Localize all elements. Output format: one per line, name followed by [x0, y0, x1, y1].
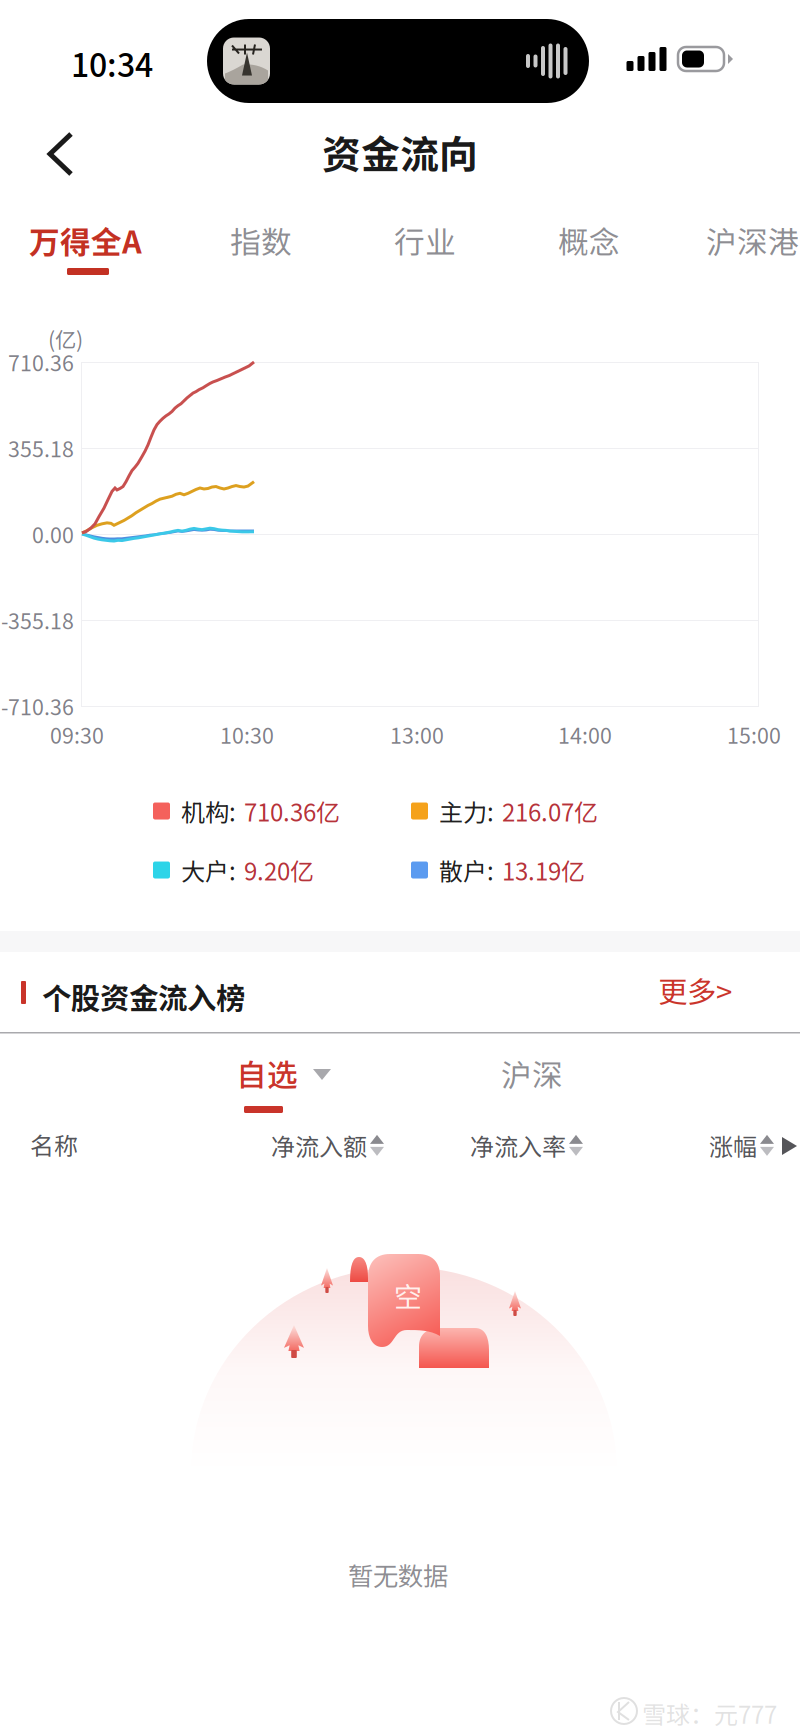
button[interactable]: 沪深港通 — [706, 203, 800, 293]
staticText: 沪深港通 — [706, 218, 800, 262]
button[interactable]: 沪深 — [501, 1051, 581, 1111]
staticText: 空 — [394, 1275, 422, 1315]
staticText: 355.18 — [8, 433, 74, 463]
staticText: 万得全A — [29, 218, 142, 262]
button[interactable]: Back — [28, 118, 104, 194]
button[interactable]: 涨幅 — [709, 1122, 774, 1169]
staticText: -355.18 — [1, 605, 74, 635]
button[interactable]: 万得全A — [29, 203, 179, 293]
staticText: 净流入率 — [470, 1128, 566, 1163]
staticText: 沪深 — [501, 1051, 563, 1095]
staticText: (亿) — [48, 323, 83, 354]
button[interactable]: 自选 — [236, 1040, 340, 1118]
staticText: 710.36 — [8, 347, 74, 377]
staticText: 指数 — [230, 218, 292, 262]
staticText: 雪球：元777 — [642, 1696, 777, 1731]
staticText: 自选 — [236, 1051, 298, 1095]
staticText: 216.07亿 — [502, 794, 598, 828]
staticText: 0.00 — [32, 519, 74, 549]
staticText: 行业 — [394, 218, 456, 262]
button[interactable]: 更多> — [658, 960, 768, 1020]
staticText: 10:30 — [220, 719, 274, 750]
staticText: 更多> — [658, 969, 732, 1011]
staticText: 13.19亿 — [502, 853, 585, 887]
staticText: -710.36 — [1, 691, 74, 721]
staticText: 概念 — [558, 218, 620, 262]
staticText: 净流入额 — [271, 1128, 367, 1163]
staticText: 名称 — [30, 1127, 78, 1162]
staticText: 10:34 — [71, 40, 153, 86]
button[interactable]: 净流入额 — [271, 1122, 384, 1169]
staticText: 大户: — [181, 853, 236, 887]
button[interactable]: 行业 — [394, 203, 544, 293]
staticText: 暂无数据 — [348, 1556, 448, 1593]
staticText: 主力: — [439, 794, 494, 828]
staticText: 09:30 — [50, 719, 104, 750]
staticText: 9.20亿 — [244, 853, 314, 887]
staticText: 13:00 — [390, 719, 444, 750]
staticText: 14:00 — [558, 719, 612, 750]
button[interactable]: 概念 — [558, 203, 708, 293]
button[interactable]: 指数 — [230, 203, 380, 293]
staticText: 15:00 — [727, 719, 781, 750]
staticText: 个股资金流入榜 — [42, 975, 245, 1017]
staticText: 710.36亿 — [244, 794, 340, 828]
staticText: 资金流向 — [322, 124, 478, 180]
staticText: 机构: — [181, 794, 236, 828]
button[interactable]: 净流入率 — [470, 1122, 583, 1169]
staticText: 散户: — [439, 853, 494, 887]
staticText: 涨幅 — [709, 1128, 757, 1163]
